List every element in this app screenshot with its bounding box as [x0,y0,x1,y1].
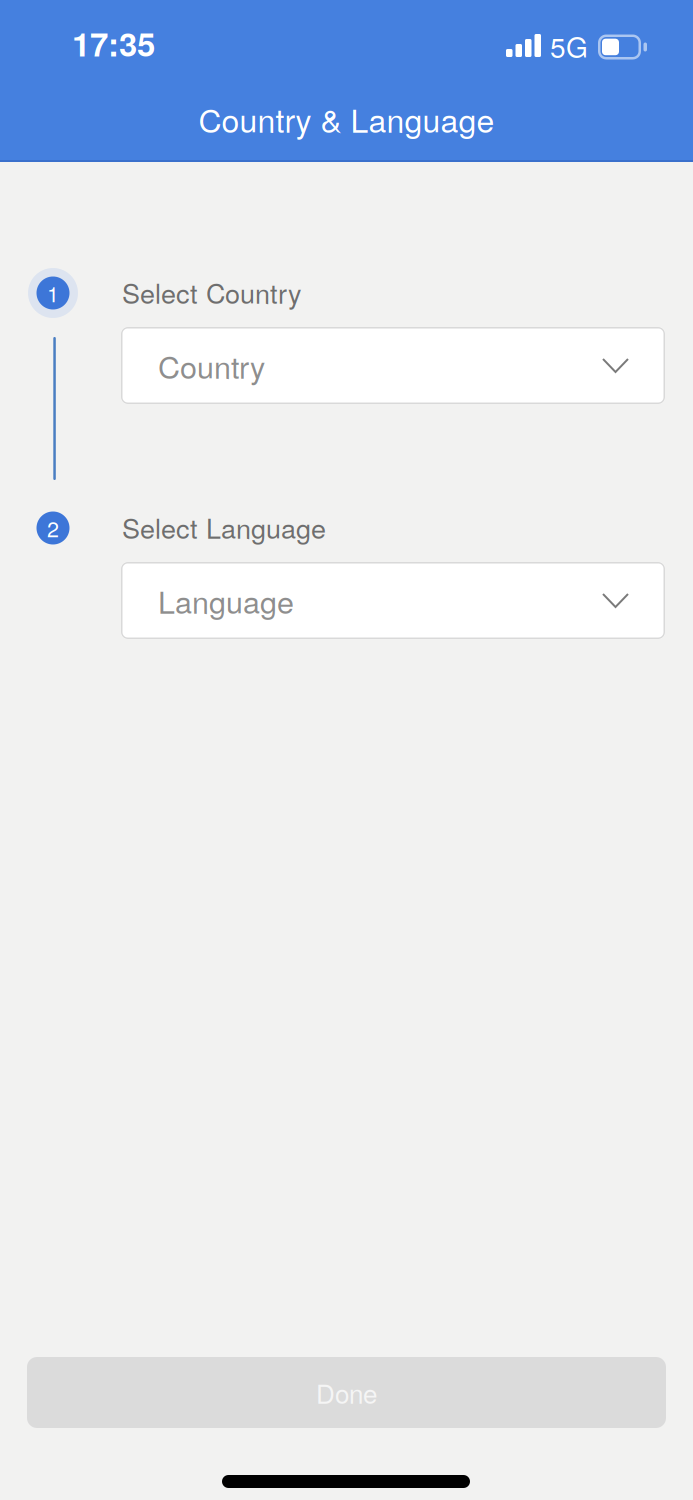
staticText: 17:35 [72,19,155,67]
staticText: Select Country [122,273,302,311]
staticText: 1 [47,278,59,308]
staticText: Country & Language [198,96,494,142]
staticText: Language [158,579,294,622]
button[interactable]: Language [121,562,665,639]
staticText: 5G [550,26,588,66]
staticText: Select Language [122,508,326,546]
staticText: Done [316,1374,377,1411]
staticText: 2 [47,513,59,543]
button[interactable]: Country [121,327,665,404]
staticText: Country [158,344,265,387]
